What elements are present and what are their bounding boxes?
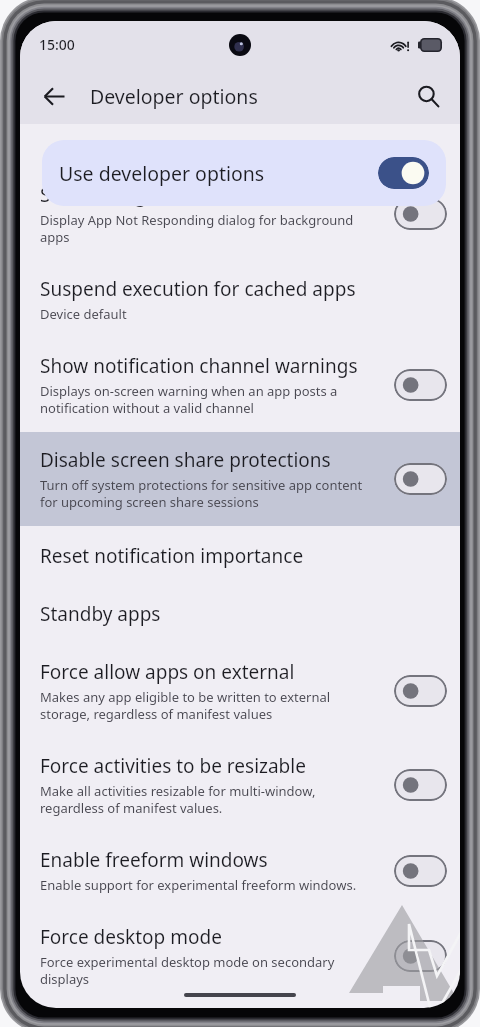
button[interactable]: Disable screen share protections bbox=[20, 432, 460, 526]
button[interactable]: Search bbox=[406, 74, 450, 118]
staticText: Displays on-screen warning when an app p… bbox=[40, 382, 370, 417]
staticText: Standby apps bbox=[40, 601, 161, 627]
staticText: 15:00 bbox=[39, 35, 75, 54]
staticText: Force experimental desktop mode on secon… bbox=[40, 953, 370, 988]
button[interactable]: Toggle bbox=[394, 940, 447, 972]
staticText: Turn off system protections for sensitiv… bbox=[40, 476, 370, 511]
button[interactable]: Force activities to be resizable bbox=[20, 738, 460, 832]
button[interactable]: Show background ANRs bbox=[20, 167, 460, 261]
staticText: Reset notification importance bbox=[40, 543, 304, 569]
button[interactable]: Reset notification importance bbox=[20, 526, 460, 585]
staticText: Disable screen share protections bbox=[40, 447, 331, 473]
button[interactable]: Enable freeform windows bbox=[20, 832, 460, 909]
staticText: Enable support for experimental freeform… bbox=[40, 876, 357, 894]
staticText: Make all activities resizable for multi-… bbox=[40, 782, 370, 817]
button[interactable]: Toggle bbox=[394, 198, 447, 230]
staticText: Force desktop mode bbox=[40, 924, 222, 950]
button[interactable]: Toggle bbox=[394, 369, 447, 401]
button[interactable]: Toggle bbox=[394, 675, 447, 707]
button[interactable]: Toggle bbox=[394, 855, 447, 887]
staticText: Display App Not Responding dialog for ba… bbox=[40, 211, 370, 246]
button[interactable]: Use developer options toggle bbox=[378, 157, 429, 189]
staticText: Use developer options bbox=[59, 160, 265, 187]
button[interactable]: Toggle bbox=[394, 769, 447, 801]
staticText: Developer options bbox=[90, 83, 258, 110]
staticText: Suspend execution for cached apps bbox=[40, 276, 356, 302]
staticText: Force activities to be resizable bbox=[40, 753, 306, 779]
button[interactable]: Use developer options bbox=[42, 140, 446, 206]
staticText: Show background ANRs bbox=[40, 182, 254, 208]
button[interactable]: Force allow apps on external bbox=[20, 643, 460, 738]
staticText: Enable freeform windows bbox=[40, 847, 268, 873]
button[interactable]: Suspend execution for cached apps bbox=[20, 261, 460, 338]
button[interactable]: Back bbox=[32, 74, 76, 118]
staticText: Show notification channel warnings bbox=[40, 353, 358, 379]
button[interactable]: Show notification channel warnings bbox=[20, 338, 460, 432]
button[interactable]: Force desktop mode bbox=[20, 909, 460, 1003]
button[interactable]: Standby apps bbox=[20, 585, 460, 643]
button[interactable]: Toggle bbox=[394, 463, 447, 495]
staticText: Force allow apps on external bbox=[40, 659, 295, 685]
staticText: Device default bbox=[40, 305, 127, 323]
staticText: Makes any app eligible to be written to … bbox=[40, 688, 370, 723]
